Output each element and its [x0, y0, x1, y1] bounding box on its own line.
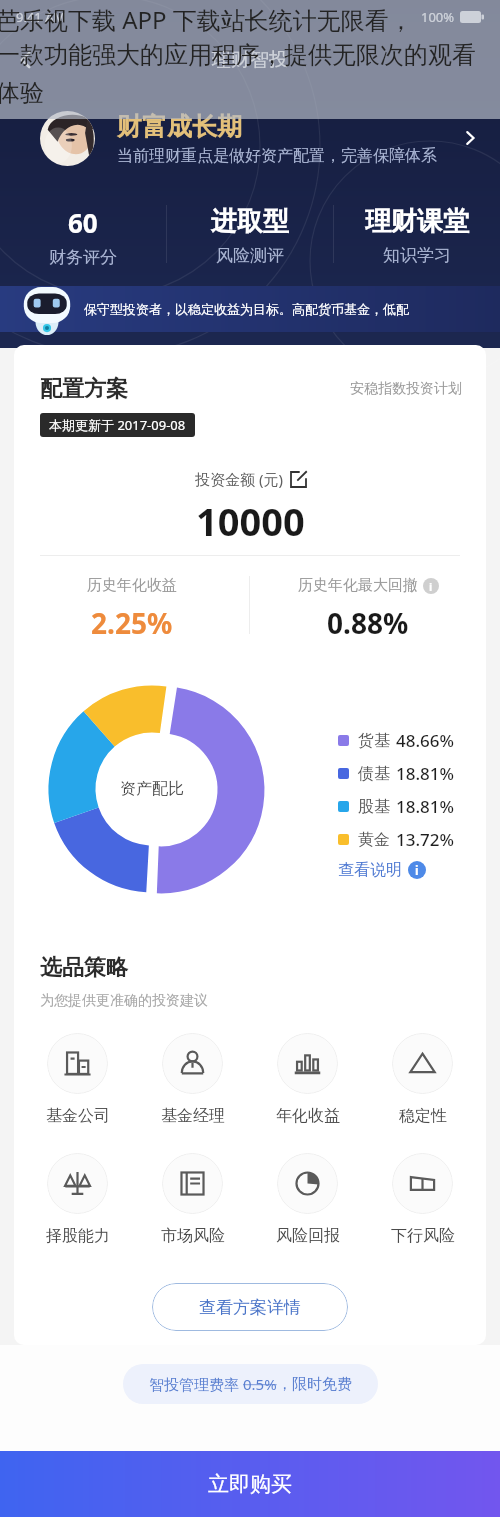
staticText: 查看说明	[338, 860, 402, 880]
button[interactable]: 立即购买	[0, 1451, 500, 1517]
staticText: 知识学习	[383, 245, 451, 266]
staticText: 配置方案	[40, 375, 128, 403]
staticText: 择股能力	[46, 1226, 110, 1246]
staticText: 100%	[421, 8, 455, 26]
staticText: 立即购买	[208, 1471, 292, 1497]
button[interactable]: 风险回报	[250, 1153, 365, 1246]
staticText: 理财课堂	[365, 205, 469, 238]
staticText: i	[415, 862, 419, 878]
button[interactable]: 保守型投资者，以稳定收益为目标。高配货币基金，低配	[0, 286, 500, 332]
button[interactable]: 基金公司	[20, 1033, 135, 1126]
button[interactable]: 基金经理	[135, 1033, 250, 1126]
staticText: 18.81%	[396, 795, 455, 818]
staticText: 当前理财重点是做好资产配置，完善保障体系	[117, 146, 437, 166]
staticText: 9:41 AM	[16, 8, 66, 26]
staticText: 保守型投资者，以稳定收益为目标。高配货币基金，低配	[84, 301, 409, 317]
staticText: 18.81%	[396, 762, 455, 785]
staticText: 0.5%	[243, 1374, 277, 1394]
button[interactable]: 下行风险	[365, 1153, 480, 1246]
staticText: 财富成长期	[117, 111, 242, 142]
staticText: 财务评分	[49, 247, 117, 268]
staticText: 年化收益	[276, 1106, 340, 1126]
button[interactable]: 查看方案详情	[152, 1283, 348, 1331]
staticText: 60	[68, 205, 98, 240]
button[interactable]: 黄金	[338, 828, 455, 851]
staticText: 历史年化最大回撤	[298, 576, 418, 595]
staticText: 芭乐视下载 APP 下载站长统计无限看，	[0, 3, 413, 36]
staticText: 10000	[196, 495, 305, 547]
staticText: 选品策略	[40, 954, 128, 982]
button[interactable]: 60	[0, 205, 166, 268]
staticText: 0.88%	[327, 604, 409, 642]
staticText: 债基	[358, 764, 390, 784]
button[interactable]: 理财课堂	[334, 205, 500, 266]
button[interactable]: 市场风险	[135, 1153, 250, 1246]
button[interactable]: 股基	[338, 795, 455, 818]
staticText: 货基	[358, 731, 390, 751]
button[interactable]: 历史年化最大回撤	[250, 576, 486, 642]
staticText: 历史年化收益	[87, 576, 177, 595]
button[interactable]: 历史年化收益	[14, 576, 249, 642]
staticText: 市场风险	[161, 1226, 225, 1246]
staticText: 安稳指数投资计划	[350, 380, 462, 398]
staticText: 资产配比	[120, 779, 184, 799]
staticText: 风险回报	[276, 1226, 340, 1246]
staticText: 查看方案详情	[199, 1297, 301, 1318]
staticText: 下行风险	[391, 1226, 455, 1246]
staticText: 48.66%	[396, 729, 455, 752]
button[interactable]: 稳定性	[365, 1033, 480, 1126]
staticText: 为您提供更准确的投资建议	[40, 992, 208, 1010]
staticText: 基金公司	[46, 1106, 110, 1126]
button[interactable]: 债基	[338, 762, 455, 785]
staticText: 一款功能强大的应用程序，提供无限次的观看	[0, 40, 476, 70]
staticText: 13.72%	[396, 828, 455, 851]
staticText: 2.25%	[91, 604, 173, 642]
button[interactable]: 查看说明	[338, 860, 426, 880]
button[interactable]: 返回	[0, 34, 52, 86]
staticText: 投资金额 (元)	[195, 469, 283, 489]
staticText: 进取型	[211, 205, 289, 238]
staticText: 基金经理	[161, 1106, 225, 1126]
staticText: 本期更新于 2017-09-08	[49, 416, 186, 434]
button[interactable]: 年化收益	[250, 1033, 365, 1126]
button[interactable]: 智投管理费率	[123, 1364, 378, 1404]
staticText: 智投管理费率	[149, 1374, 243, 1394]
staticText: 体验	[0, 78, 44, 108]
button[interactable]: 财富成长期	[0, 102, 500, 174]
staticText: 理财智投	[212, 48, 288, 72]
staticText: i	[429, 579, 433, 594]
button[interactable]: 投资金额 (元)	[14, 469, 486, 489]
staticText: 稳定性	[399, 1106, 447, 1126]
staticText: 风险测评	[216, 245, 284, 266]
button[interactable]: 货基	[338, 729, 455, 752]
staticText: 黄金	[358, 830, 390, 850]
button[interactable]: 择股能力	[20, 1153, 135, 1246]
staticText: 股基	[358, 797, 390, 817]
button[interactable]: 查看详情	[458, 126, 482, 150]
button[interactable]: 进取型	[167, 205, 333, 266]
staticText: ，限时免费	[277, 1375, 352, 1394]
